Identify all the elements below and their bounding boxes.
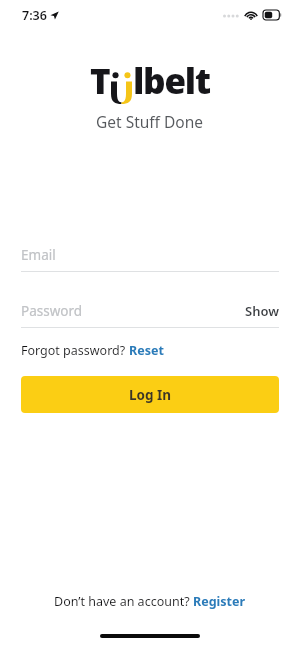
staticText: 7:36 (22, 7, 47, 24)
staticText: Email (21, 246, 56, 264)
button[interactable]: Register (193, 593, 246, 610)
button[interactable]: Email (21, 246, 279, 272)
staticText: T (90, 57, 110, 105)
staticText: Get Stuff Done (96, 111, 204, 132)
staticText: Register (193, 593, 246, 610)
staticText: Log In (129, 386, 172, 404)
button[interactable]: Log In (21, 376, 279, 413)
button[interactable]: Show (245, 302, 279, 320)
staticText: Forgot password? (21, 342, 129, 359)
staticText: Show (245, 302, 279, 320)
button[interactable]: Reset (129, 342, 164, 359)
staticText: Password (21, 302, 83, 320)
button[interactable]: Password (21, 302, 279, 328)
staticText: Don’t have an account? (54, 593, 193, 610)
staticText: Reset (129, 342, 164, 359)
staticText: lbelt (133, 57, 210, 105)
